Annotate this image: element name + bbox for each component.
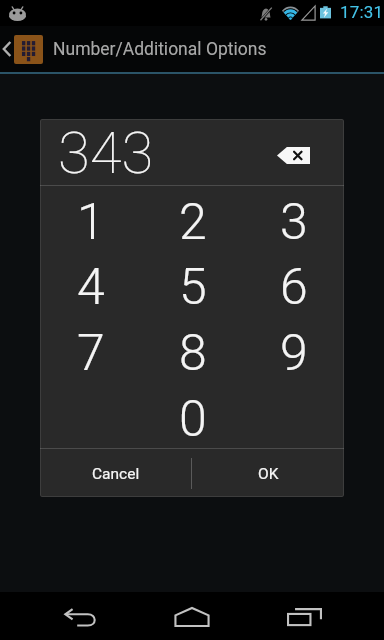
button[interactable]: Backspace: [271, 133, 315, 177]
staticText: 0: [179, 390, 207, 449]
button[interactable]: Navigate up: [0, 26, 47, 70]
staticText: OK: [258, 465, 279, 483]
button[interactable]: 8: [142, 316, 243, 382]
button[interactable]: Home: [136, 592, 248, 640]
staticText: 1: [77, 193, 105, 252]
staticText: Number/Additional Options: [53, 39, 267, 60]
staticText: 9: [280, 324, 308, 383]
staticText: 7: [77, 324, 105, 383]
staticText: 6: [280, 258, 308, 317]
button[interactable]: 2: [142, 186, 243, 251]
button[interactable]: OK: [192, 449, 344, 497]
staticText: 2: [179, 193, 207, 252]
button[interactable]: 1: [40, 186, 142, 251]
button[interactable]: 6: [243, 251, 344, 316]
button[interactable]: Recent apps: [248, 592, 360, 640]
button[interactable]: Cancel: [40, 449, 191, 497]
staticText: 8: [179, 324, 207, 383]
button[interactable]: Back: [24, 592, 136, 640]
button[interactable]: 3: [243, 186, 344, 251]
button[interactable]: 5: [142, 251, 243, 316]
staticText: Cancel: [92, 465, 140, 483]
staticText: 4: [77, 258, 105, 317]
button[interactable]: 0: [142, 382, 243, 448]
staticText: 3: [280, 193, 308, 252]
staticText: 5: [179, 258, 207, 317]
button[interactable]: 7: [40, 316, 142, 382]
staticText: 17:31: [340, 2, 384, 22]
button[interactable]: 4: [40, 251, 142, 316]
button[interactable]: 9: [243, 316, 344, 382]
staticText: 343: [58, 119, 154, 185]
